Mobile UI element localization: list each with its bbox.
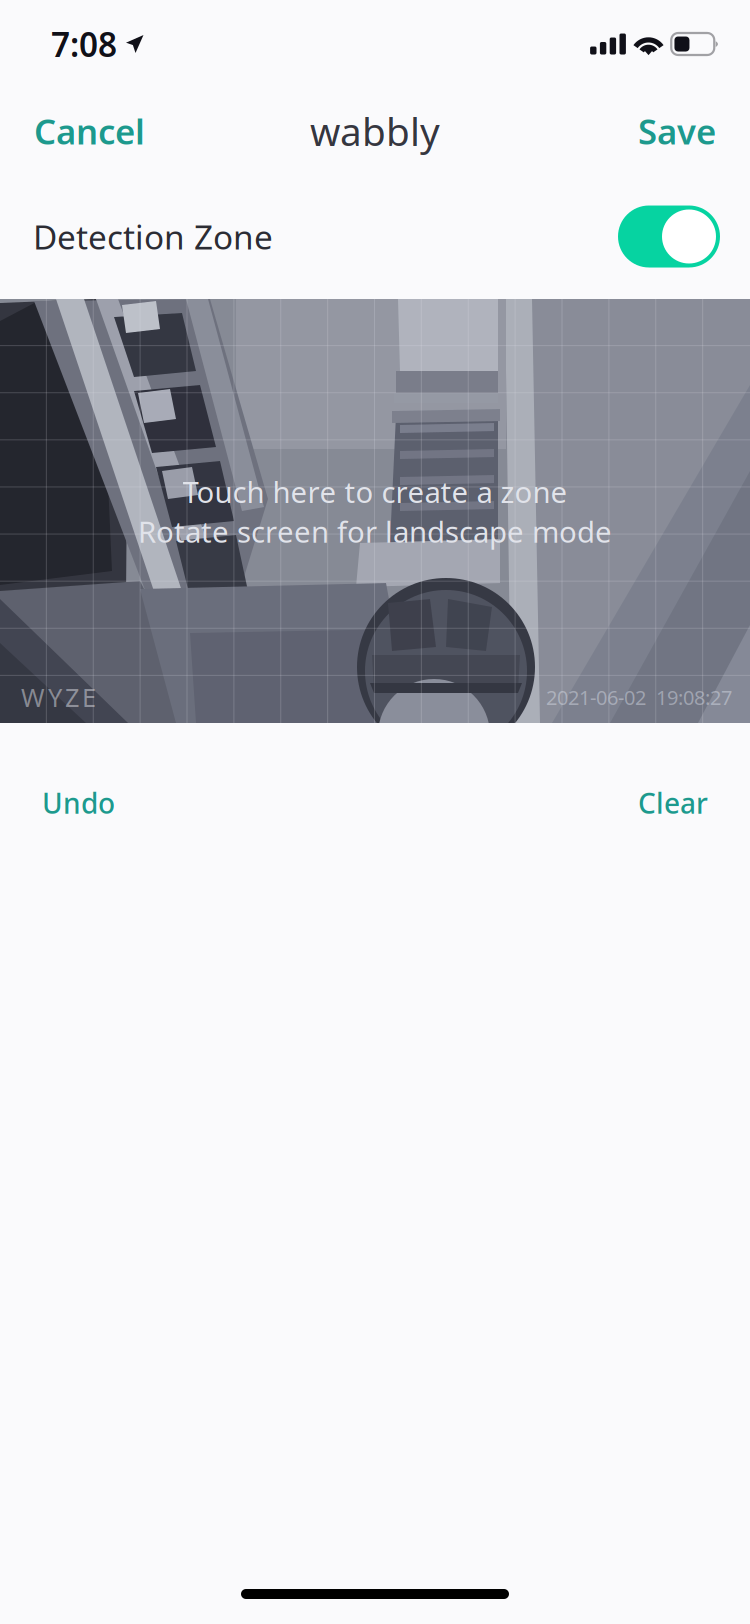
button[interactable]: Clear <box>628 770 718 836</box>
staticText: 7:08 <box>51 22 117 66</box>
staticText: Detection Zone <box>33 214 273 259</box>
staticText: Cancel <box>34 108 145 154</box>
staticText: Undo <box>42 784 115 822</box>
button[interactable]: Camera preview, touch to create a zone <box>0 299 750 723</box>
staticText: Y <box>48 680 62 714</box>
staticText: 2021-06-02 19:08:27 <box>546 684 732 710</box>
button[interactable]: Detection Zone <box>0 174 750 299</box>
staticText: Touch here to create a zone <box>182 472 567 511</box>
staticText: E <box>82 680 96 714</box>
button[interactable]: Save <box>626 92 728 170</box>
button[interactable]: Cancel <box>22 92 157 170</box>
staticText: Z <box>65 680 79 714</box>
button[interactable]: Undo <box>32 770 125 836</box>
staticText: Clear <box>638 784 708 822</box>
staticText: W <box>21 680 45 714</box>
staticText: Rotate screen for landscape mode <box>138 512 612 551</box>
staticText: Save <box>638 108 716 154</box>
staticText: wabbly <box>310 105 440 157</box>
